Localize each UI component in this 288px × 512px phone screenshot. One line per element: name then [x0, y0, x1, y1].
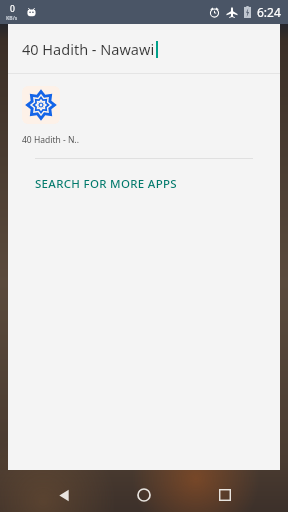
other: Alarm — [209, 7, 220, 18]
staticText: 40 Hadith - Nawawi — [22, 39, 155, 59]
staticText: SEARCH FOR MORE APPS — [35, 176, 177, 192]
staticText: 6:24 — [257, 4, 281, 20]
other: Battery charging — [244, 6, 251, 18]
staticText: 0 — [10, 3, 15, 15]
button[interactable]: 40 Hadith - Nawawi — [8, 24, 280, 73]
staticText: 40 Hadith - N.. — [22, 134, 79, 146]
staticText: KB/s — [6, 15, 18, 22]
button[interactable]: Back — [47, 478, 81, 512]
button[interactable]: SEARCH FOR MORE APPS — [8, 172, 280, 196]
button[interactable]: Recents — [208, 478, 242, 512]
other: Airplane mode — [226, 6, 238, 18]
button[interactable]: 40 Hadith - N.. — [22, 86, 84, 146]
button[interactable]: Home — [127, 478, 161, 512]
